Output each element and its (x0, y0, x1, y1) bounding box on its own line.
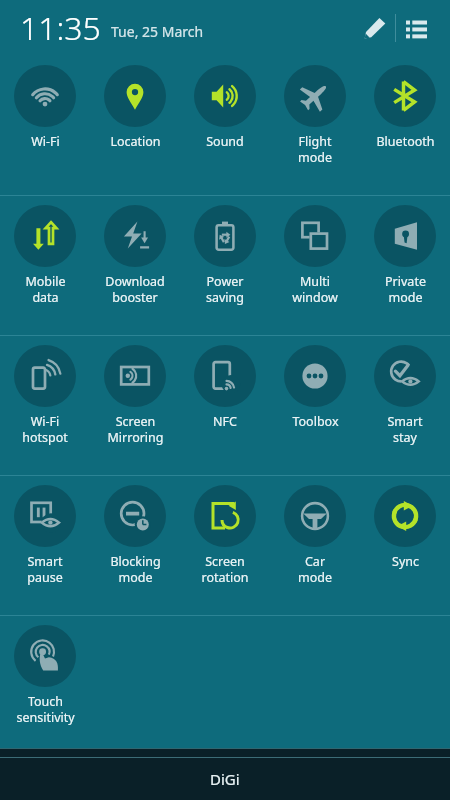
button[interactable]: Blocking mode (90, 476, 180, 615)
staticText: Wi-Fi (31, 133, 60, 150)
button[interactable]: NFC (180, 336, 270, 475)
button[interactable]: Smart stay (360, 336, 450, 475)
staticText: Power saving (206, 273, 244, 305)
button[interactable]: Download booster (90, 196, 180, 335)
button[interactable]: Smart pause (0, 476, 90, 615)
staticText: Sound (206, 133, 244, 150)
staticText: Blocking mode (110, 553, 161, 585)
staticText: Touch sensitivity (16, 693, 75, 725)
button[interactable]: Screen Mirroring (90, 336, 180, 475)
button[interactable]: Touch sensitivity (0, 616, 90, 748)
button[interactable]: Flight mode (270, 56, 360, 195)
staticText: Bluetooth (376, 133, 435, 150)
staticText: Toolbox (292, 413, 339, 430)
staticText: Multi window (292, 273, 338, 305)
staticText: Smart pause (27, 553, 63, 585)
button[interactable]: Toolbox (270, 336, 360, 475)
button[interactable]: Power saving (180, 196, 270, 335)
button[interactable]: Wi-Fi (0, 56, 90, 195)
button[interactable]: Wi-Fi hotspot (0, 336, 90, 475)
staticText: Mobile data (25, 273, 66, 305)
staticText: Private mode (385, 273, 426, 305)
staticText: Smart stay (387, 413, 423, 445)
staticText: Car mode (298, 553, 332, 585)
staticText: Tue, 25 March (111, 22, 204, 41)
staticText: Wi-Fi hotspot (22, 413, 68, 445)
staticText: Screen Mirroring (107, 413, 164, 445)
staticText: NFC (213, 413, 237, 430)
staticText: Flight mode (298, 133, 332, 165)
button[interactable]: Location (90, 56, 180, 195)
staticText: DiGi (210, 769, 240, 789)
staticText: Location (110, 133, 161, 150)
staticText: Sync (392, 553, 419, 570)
button[interactable]: Sound (180, 56, 270, 195)
button[interactable]: Sync (360, 476, 450, 615)
button[interactable]: Mobile data (0, 196, 90, 335)
staticText: Download booster (105, 273, 165, 305)
button[interactable]: Private mode (360, 196, 450, 335)
button[interactable]: Multi window (270, 196, 360, 335)
staticText: 11:35 (20, 6, 101, 50)
button[interactable]: Screen rotation (180, 476, 270, 615)
button[interactable]: Edit quick settings (355, 8, 395, 48)
staticText: Screen rotation (201, 553, 249, 585)
button[interactable]: Bluetooth (360, 56, 450, 195)
button[interactable]: Car mode (270, 476, 360, 615)
button[interactable]: Show list (396, 8, 436, 48)
